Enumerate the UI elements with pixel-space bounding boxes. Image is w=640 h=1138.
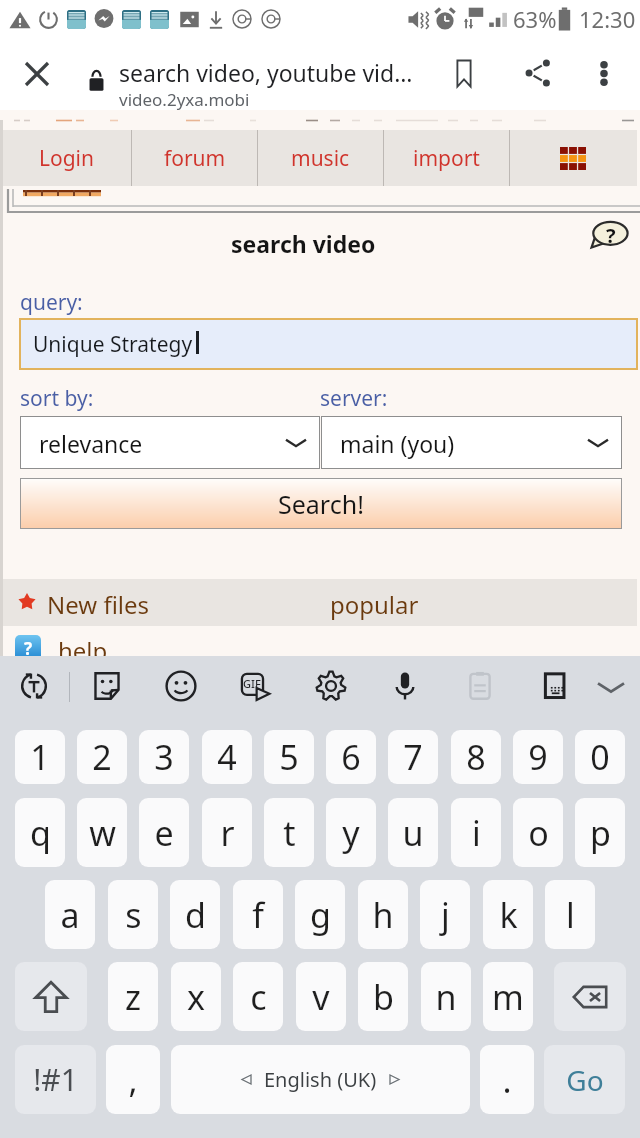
button[interactable]: Bookmark	[438, 41, 490, 93]
staticText: main (you)	[340, 428, 455, 459]
staticText: n	[435, 974, 457, 1020]
button[interactable]: search video, youtube vid…	[119, 47, 429, 105]
staticText: help	[58, 634, 108, 660]
button[interactable]: Share	[512, 41, 564, 93]
button[interactable]: j	[420, 880, 470, 949]
button[interactable]: relevance	[20, 416, 320, 469]
button[interactable]: Search!	[20, 478, 622, 529]
staticText: a	[60, 892, 80, 938]
button[interactable]: w	[77, 798, 127, 867]
button[interactable]: 4	[202, 730, 252, 784]
button[interactable]: music	[257, 130, 384, 186]
button[interactable]: z	[108, 962, 158, 1031]
button[interactable]: 6	[326, 730, 376, 784]
staticText: l	[566, 892, 575, 938]
button[interactable]: y	[326, 798, 376, 867]
staticText: r	[220, 810, 235, 856]
staticText: v	[312, 974, 330, 1020]
button[interactable]: u	[388, 798, 438, 867]
staticText: Go	[566, 1061, 604, 1099]
staticText: 5	[279, 734, 299, 780]
staticText: w	[89, 810, 116, 856]
button[interactable]: Collapse keyboard	[585, 661, 637, 713]
staticText: 63%	[513, 4, 557, 34]
button[interactable]: e	[139, 798, 189, 867]
button[interactable]: Unique Strategy	[19, 318, 638, 370]
button[interactable]: GIF	[230, 660, 282, 712]
staticText: search video, youtube vid…	[119, 57, 413, 88]
button[interactable]: m	[483, 962, 533, 1031]
button[interactable]: Clipboard	[454, 660, 506, 712]
staticText: e	[154, 810, 174, 856]
staticText: English (UK)	[264, 1066, 377, 1093]
button[interactable]: ?	[3, 630, 637, 656]
button[interactable]: Voice input	[379, 660, 431, 712]
button[interactable]: r	[202, 798, 252, 867]
button[interactable]: k	[483, 880, 533, 949]
button[interactable]: f	[233, 880, 283, 949]
staticText: o	[528, 810, 549, 856]
button[interactable]: import	[383, 130, 510, 186]
button[interactable]: c	[233, 962, 283, 1031]
button[interactable]: n	[421, 962, 471, 1031]
staticText: b	[373, 974, 394, 1020]
button[interactable]: New files	[3, 579, 637, 626]
button[interactable]: ,	[106, 1045, 160, 1114]
button[interactable]: !#1	[15, 1045, 96, 1114]
button[interactable]: 5	[264, 730, 314, 784]
button[interactable]: 0	[575, 730, 625, 784]
button[interactable]: Emoji	[155, 660, 207, 712]
staticText: 12:30	[579, 4, 636, 34]
button[interactable]: Keyboard modes	[529, 660, 581, 712]
staticText: sort by:	[20, 384, 94, 413]
button[interactable]: q	[15, 798, 65, 867]
button[interactable]: d	[170, 880, 220, 949]
button[interactable]: Shift	[15, 962, 87, 1031]
button[interactable]: Menu grid	[509, 130, 637, 186]
button[interactable]: More options	[578, 41, 630, 93]
button[interactable]: Translate	[8, 660, 60, 712]
staticText: !#1	[33, 1059, 78, 1100]
button[interactable]: b	[358, 962, 408, 1031]
button[interactable]: i	[451, 798, 501, 867]
button[interactable]: Space	[171, 1045, 470, 1114]
button[interactable]: s	[108, 880, 158, 949]
button[interactable]: g	[295, 880, 345, 949]
staticText: ?	[24, 637, 33, 660]
staticText: Login	[39, 144, 95, 173]
button[interactable]: 1	[15, 730, 65, 784]
button[interactable]: Settings	[305, 660, 357, 712]
button[interactable]: forum	[131, 130, 258, 186]
button[interactable]: main (you)	[321, 416, 622, 469]
button[interactable]: h	[358, 880, 408, 949]
staticText: 9	[528, 734, 548, 780]
staticText: 0	[590, 734, 610, 780]
button[interactable]: Backspace	[554, 962, 626, 1031]
button[interactable]: 7	[388, 730, 438, 784]
button[interactable]: 8	[451, 730, 501, 784]
button[interactable]: 3	[139, 730, 189, 784]
button[interactable]: o	[513, 798, 563, 867]
button[interactable]: Close	[11, 48, 63, 100]
staticText: query:	[20, 288, 83, 317]
staticText: 7	[403, 734, 423, 780]
staticText: 1	[30, 734, 50, 780]
button[interactable]: Go	[544, 1045, 625, 1114]
button[interactable]: x	[171, 962, 221, 1031]
staticText: 3	[154, 734, 174, 780]
button[interactable]: 2	[77, 730, 127, 784]
button[interactable]: .	[480, 1045, 534, 1114]
button[interactable]: Stickers	[81, 660, 133, 712]
staticText: h	[372, 892, 394, 938]
staticText: k	[499, 892, 518, 938]
staticText: y	[342, 810, 360, 856]
button[interactable]: v	[296, 962, 346, 1031]
button[interactable]: Login	[3, 130, 130, 186]
staticText: relevance	[39, 428, 143, 459]
button[interactable]: 9	[513, 730, 563, 784]
button[interactable]: a	[45, 880, 95, 949]
button[interactable]: p	[575, 798, 625, 867]
button[interactable]: Help	[588, 214, 632, 258]
button[interactable]: t	[264, 798, 314, 867]
button[interactable]: l	[545, 880, 595, 949]
